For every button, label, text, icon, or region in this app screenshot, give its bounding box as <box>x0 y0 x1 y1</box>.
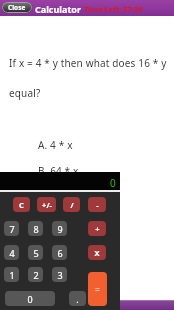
staticText: Time Left: 57:36 <box>84 4 143 14</box>
button[interactable]: 0 <box>5 291 55 306</box>
button[interactable]: 4 <box>4 245 19 260</box>
staticText: 9 <box>57 223 63 235</box>
button[interactable]: +/- <box>37 197 56 212</box>
button[interactable]: Close <box>2 2 32 13</box>
button[interactable]: 7 <box>4 221 19 236</box>
staticText: . <box>76 293 79 305</box>
staticText: 1 <box>9 269 15 281</box>
button[interactable]: 2 <box>28 267 43 282</box>
staticText: 5 <box>33 247 39 259</box>
staticText: - <box>96 200 99 210</box>
button[interactable]: C <box>13 197 30 212</box>
staticText: 6 <box>57 247 63 259</box>
staticText: equal? <box>9 86 41 100</box>
button[interactable]: . <box>69 291 86 306</box>
staticText: Calculator <box>35 3 81 15</box>
staticText: 0 <box>27 293 33 305</box>
staticText: 0 <box>110 176 116 190</box>
button[interactable]: B. 64 * x <box>36 162 81 180</box>
button[interactable]: - <box>88 197 106 212</box>
staticText: 3 <box>57 269 63 281</box>
staticText: + <box>95 224 100 234</box>
staticText: X <box>94 248 100 258</box>
staticText: = <box>95 284 100 295</box>
button[interactable]: 9 <box>52 221 67 236</box>
staticText: 7 <box>9 223 15 235</box>
staticText: / <box>70 200 74 210</box>
button[interactable]: 1 <box>4 267 19 282</box>
staticText: B. 64 * x <box>38 164 79 178</box>
staticText: 2 <box>33 269 39 281</box>
button[interactable]: / <box>63 197 80 212</box>
staticText: +/- <box>42 200 52 210</box>
button[interactable]: 5 <box>28 245 43 260</box>
button[interactable]: A. 4 * x <box>36 136 75 154</box>
staticText: A. 4 * x <box>38 138 73 152</box>
button[interactable]: = <box>88 272 107 306</box>
staticText: C <box>19 200 24 210</box>
button[interactable]: + <box>88 221 106 236</box>
staticText: If x = 4 * y then what does 16 * y <box>9 56 167 70</box>
staticText: 8 <box>33 223 39 235</box>
staticText: Close <box>8 3 26 12</box>
button[interactable]: 3 <box>52 267 67 282</box>
staticText: 4 <box>9 247 15 259</box>
button[interactable]: 8 <box>28 221 43 236</box>
button[interactable]: 6 <box>52 245 67 260</box>
button[interactable]: X <box>88 245 106 260</box>
